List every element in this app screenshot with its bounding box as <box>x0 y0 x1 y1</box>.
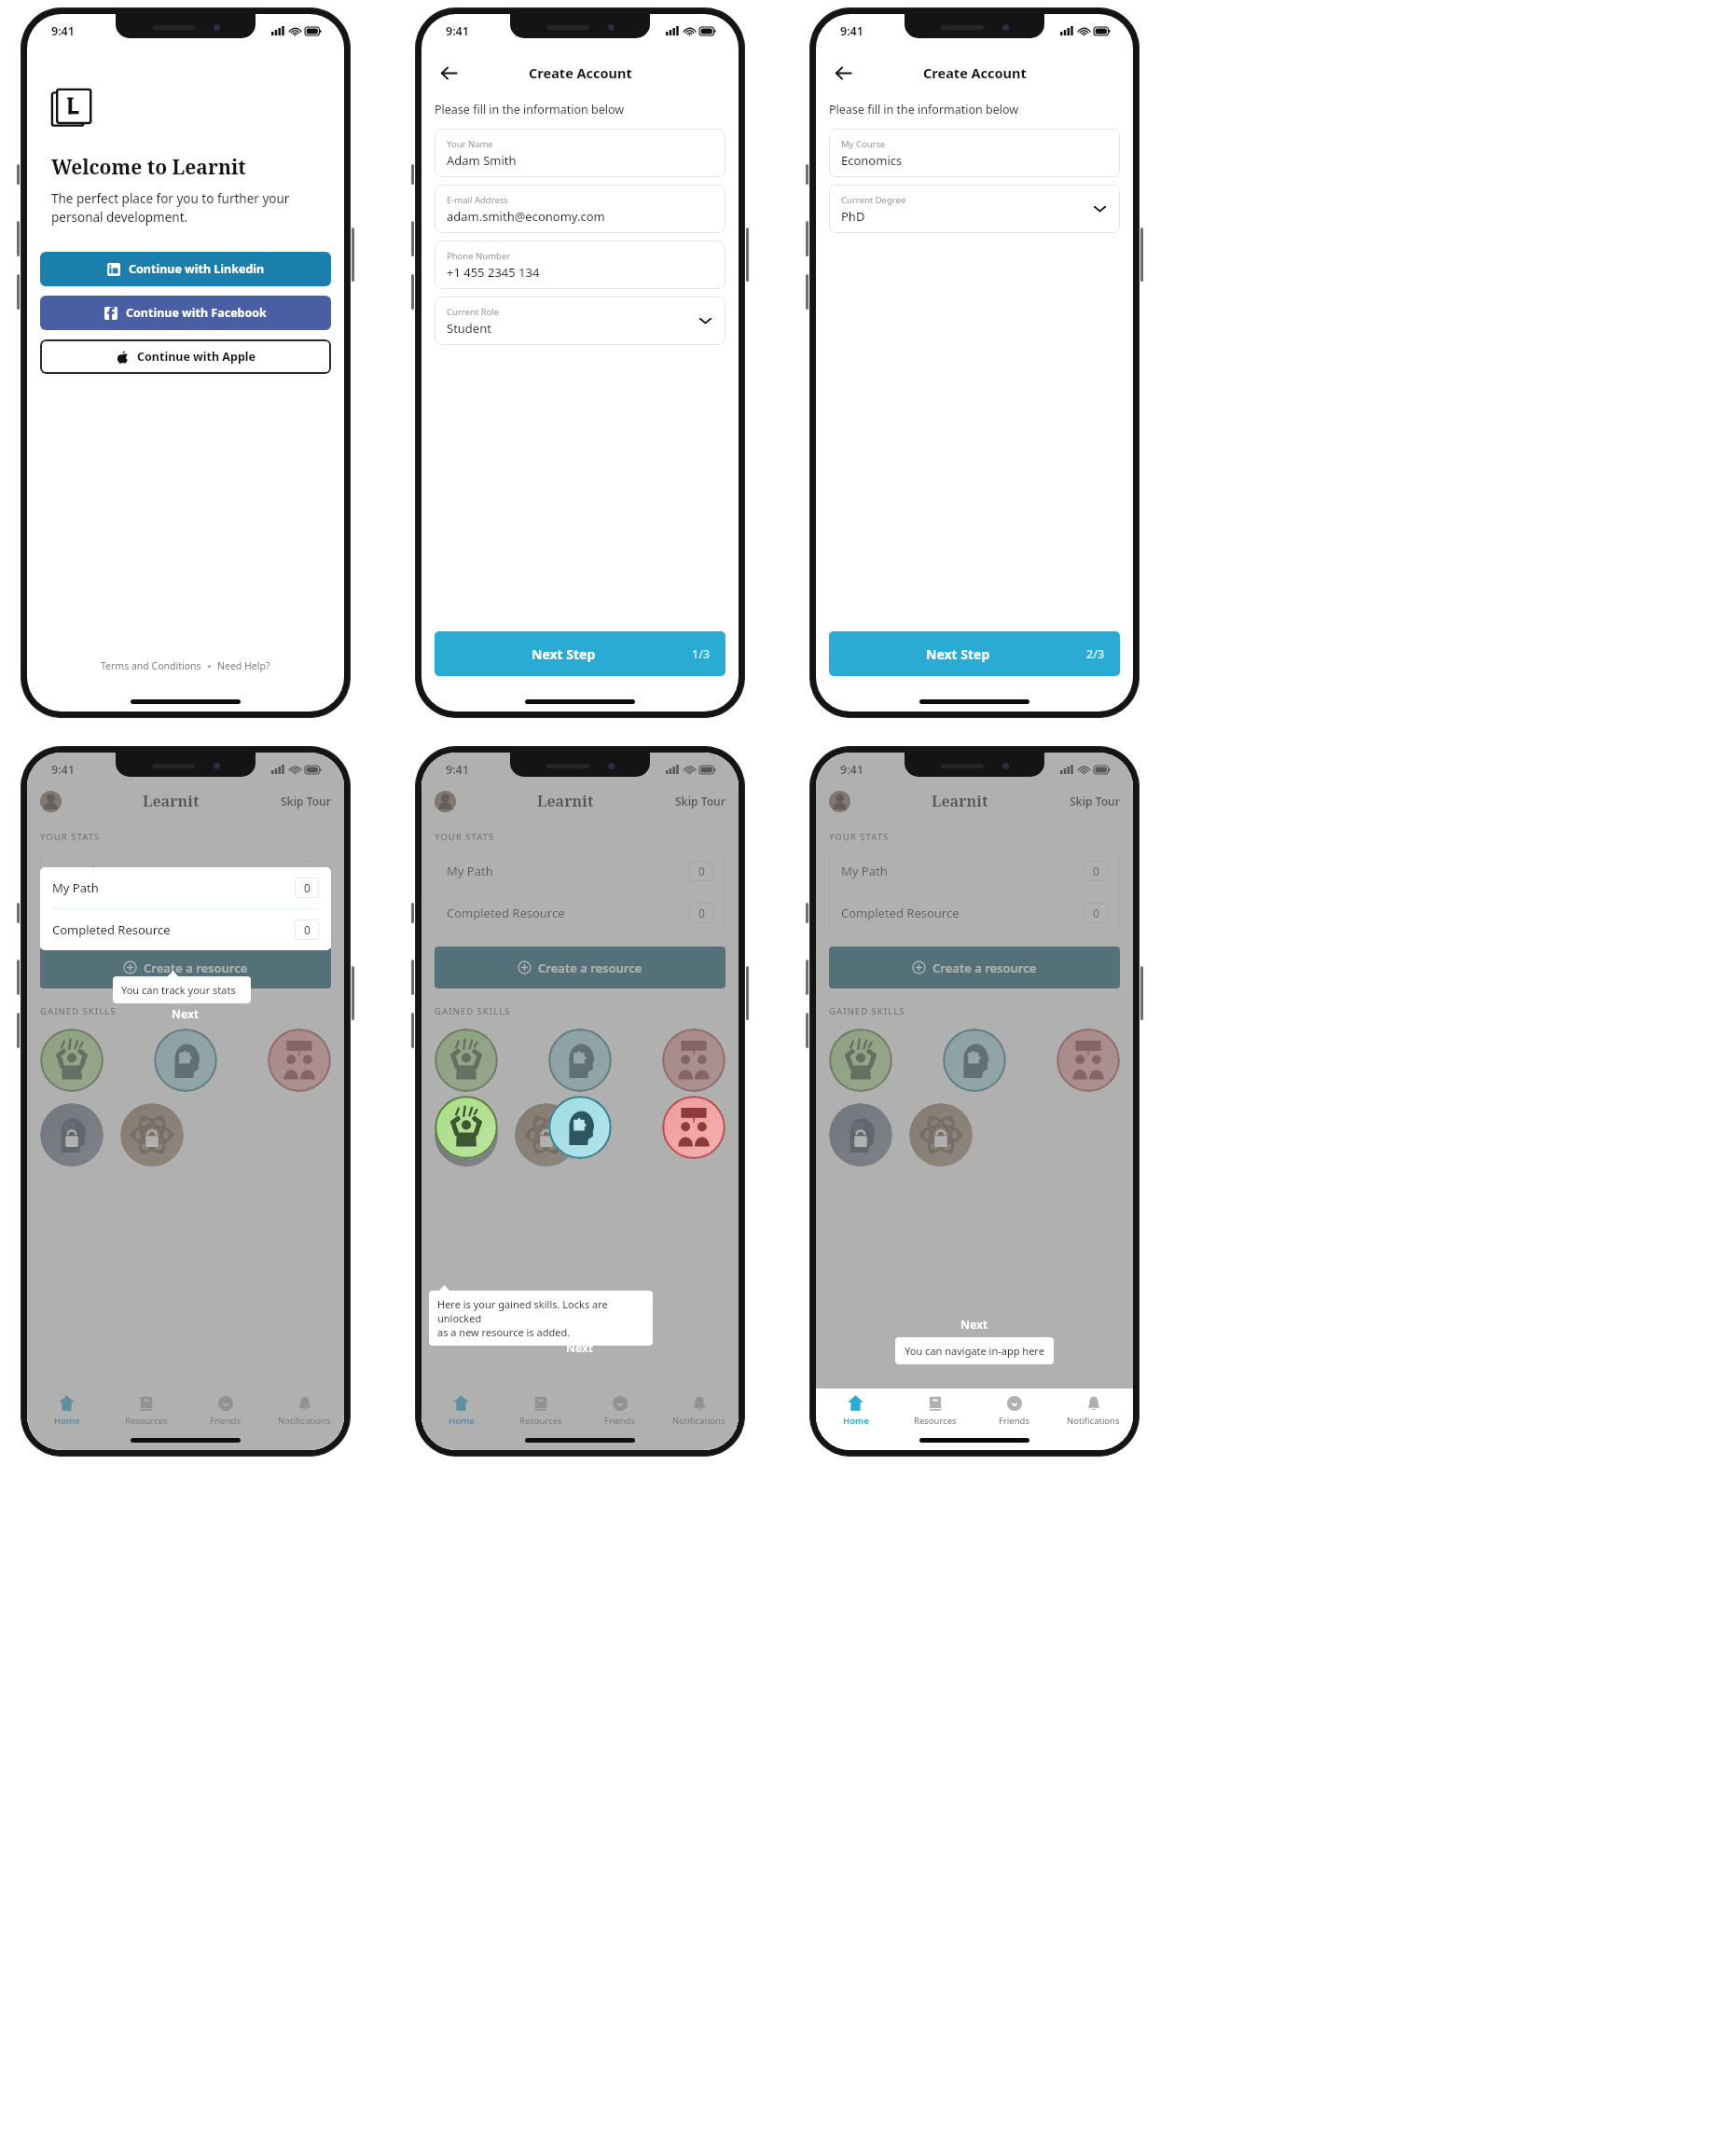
staticText: Friends <box>999 1415 1029 1427</box>
staticText: Next Step <box>532 645 596 663</box>
staticText: 2/3 <box>1086 646 1105 662</box>
staticText: 0 <box>698 864 705 878</box>
button[interactable]: Next <box>960 1317 988 1333</box>
button[interactable]: Friends <box>186 1389 265 1433</box>
button[interactable]: CLOCKHEAD <box>829 1103 892 1167</box>
button[interactable]: Notifications <box>265 1389 344 1433</box>
button[interactable]: Back <box>827 57 859 89</box>
staticText: YOUR STATS <box>40 831 101 843</box>
staticText: Phone Number <box>447 250 511 262</box>
staticText: YOUR STATS <box>435 831 495 843</box>
button[interactable]: Profile <box>829 791 850 812</box>
button[interactable]: Home <box>816 1389 895 1433</box>
button[interactable]: Notifications <box>659 1389 739 1433</box>
button[interactable]: My Path <box>52 867 319 908</box>
staticText: My Path <box>841 863 888 879</box>
button[interactable]: CLOCKHEAD <box>435 1103 498 1167</box>
button[interactable]: Continue with Apple <box>40 339 331 374</box>
button[interactable]: Resources <box>501 1389 580 1433</box>
button[interactable]: Home <box>421 1389 501 1433</box>
button[interactable]: Completed Resource <box>447 892 713 933</box>
staticText: Resources <box>125 1415 168 1427</box>
button[interactable]: Resources <box>106 1389 186 1433</box>
staticText: Resources <box>519 1415 562 1427</box>
button[interactable]: Profile <box>40 791 62 812</box>
button[interactable]: You can navigate in-app here <box>895 1337 1054 1364</box>
button[interactable]: Friends <box>974 1389 1054 1433</box>
staticText: Create a resource <box>144 960 248 976</box>
button[interactable]: Create a resource <box>435 947 725 988</box>
staticText: My Path <box>52 879 99 896</box>
button[interactable]: You can track your stats <box>113 976 251 1003</box>
staticText: 0 <box>304 880 311 895</box>
button[interactable]: Notifications <box>1054 1389 1133 1433</box>
button[interactable]: My Path <box>52 850 319 891</box>
button[interactable]: Here is your gained skills. Locks are un… <box>429 1291 653 1346</box>
staticText: YOUR STATS <box>829 831 890 843</box>
button[interactable]: STRESS <box>829 1029 892 1092</box>
button[interactable]: PUZZLE <box>154 1029 217 1092</box>
staticText: You can navigate in-app here <box>903 1344 1046 1358</box>
button[interactable]: PUZZLE <box>548 1029 612 1092</box>
button[interactable]: Back <box>433 57 464 89</box>
button[interactable]: TEAM <box>268 1029 331 1092</box>
button[interactable]: Home <box>816 1389 895 1433</box>
button[interactable]: Next <box>172 1006 200 1022</box>
button[interactable]: TEAM <box>1057 1029 1120 1092</box>
button[interactable]: TEAM <box>662 1029 725 1092</box>
button[interactable]: Next <box>566 1340 594 1356</box>
button[interactable]: Completed Resource <box>52 909 319 950</box>
button[interactable]: Next Step <box>435 631 725 676</box>
button[interactable]: Home <box>27 1389 106 1433</box>
staticText: 9:41 <box>51 23 75 39</box>
button[interactable]: Current Role <box>435 297 725 345</box>
button[interactable]: Notifications <box>1054 1389 1133 1433</box>
staticText: Student <box>447 320 491 337</box>
staticText: Home <box>843 1415 869 1427</box>
button[interactable]: PUZZLE <box>943 1029 1006 1092</box>
button[interactable]: My Path <box>841 850 1108 891</box>
button[interactable]: Terms and Conditions <box>101 659 201 672</box>
staticText: Completed Resource <box>447 905 565 921</box>
staticText: 0 <box>698 905 705 920</box>
staticText: 0 <box>304 905 311 920</box>
button[interactable]: Your Name <box>435 129 725 177</box>
button[interactable]: STRESS <box>435 1029 498 1092</box>
button[interactable]: Skip Tour <box>675 794 725 808</box>
button[interactable]: Continue with Linkedin <box>40 252 331 286</box>
button[interactable]: ATOM <box>515 1103 578 1167</box>
staticText: adam.smith@economy.com <box>447 208 605 225</box>
button[interactable]: Skip Tour <box>281 794 331 808</box>
button[interactable]: Create a resource <box>829 947 1120 988</box>
staticText: Continue with Facebook <box>126 305 267 321</box>
button[interactable]: TEAM <box>662 1096 725 1159</box>
staticText: Your Name <box>447 138 493 150</box>
button[interactable]: Create a resource <box>40 947 331 988</box>
staticText: Completed Resource <box>52 905 171 921</box>
button[interactable]: STRESS <box>435 1096 498 1159</box>
button[interactable]: Phone Number <box>435 241 725 289</box>
button[interactable]: Next Step <box>829 631 1120 676</box>
staticText: 1/3 <box>692 646 711 662</box>
button[interactable]: My Course <box>829 129 1120 177</box>
button[interactable]: Friends <box>974 1389 1054 1433</box>
staticText: Resources <box>914 1415 957 1427</box>
button[interactable]: ATOM <box>909 1103 973 1167</box>
button[interactable]: PUZZLE <box>548 1096 612 1159</box>
button[interactable]: My Path <box>447 850 713 891</box>
button[interactable]: STRESS <box>40 1029 104 1092</box>
button[interactable]: Resources <box>895 1389 974 1433</box>
button[interactable]: Resources <box>895 1389 974 1433</box>
button[interactable]: E-mail Address <box>435 185 725 233</box>
staticText: Notifications <box>1067 1415 1120 1427</box>
button[interactable]: CLOCKHEAD <box>40 1103 104 1167</box>
button[interactable]: Need Help? <box>217 659 270 672</box>
button[interactable]: Profile <box>435 791 456 812</box>
button[interactable]: Continue with Facebook <box>40 296 331 330</box>
button[interactable]: Completed Resource <box>52 892 319 933</box>
button[interactable]: ATOM <box>120 1103 184 1167</box>
button[interactable]: Skip Tour <box>1070 794 1120 808</box>
button[interactable]: Friends <box>580 1389 659 1433</box>
button[interactable]: Completed Resource <box>841 892 1108 933</box>
button[interactable]: Current Degree <box>829 185 1120 233</box>
